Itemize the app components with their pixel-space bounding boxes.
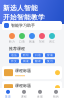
- button[interactable]: 词汇: [47, 33, 57, 43]
- button[interactable]: 听写: [21, 53, 31, 57]
- staticText: 发现: [37, 95, 43, 98]
- button[interactable]: 口语: [17, 33, 27, 43]
- button[interactable]: 口语: [33, 53, 43, 57]
- button[interactable]: 课程标题: [2, 66, 62, 79]
- button[interactable]: 课程标题: [2, 81, 62, 94]
- staticText: 翻译: [35, 60, 41, 63]
- staticText: 口语: [35, 54, 41, 57]
- staticText: 课程标题: [15, 83, 31, 88]
- staticText: 阅读: [29, 40, 35, 43]
- staticText: 复习: [47, 60, 53, 63]
- button[interactable]: 复习: [45, 59, 55, 63]
- staticText: 课程标题: [15, 68, 31, 73]
- staticText: 语法: [11, 54, 17, 57]
- button[interactable]: 课程: [16, 90, 32, 98]
- staticText: 口语: [19, 40, 25, 43]
- staticText: 我的: [53, 95, 59, 98]
- staticText: 首页: [5, 95, 11, 98]
- staticText: 听写: [23, 54, 29, 57]
- button[interactable]: 我的: [48, 90, 64, 98]
- button[interactable]: 作文: [9, 59, 19, 63]
- button[interactable]: 背诵: [45, 53, 55, 57]
- staticText: 开始智能教学: [3, 13, 45, 21]
- button[interactable]: 阅读: [27, 33, 37, 43]
- staticText: ★★★★★: [15, 74, 25, 77]
- staticText: 新选人智能: [3, 4, 38, 12]
- button[interactable]: 发现: [32, 90, 48, 98]
- staticText: 智能学习助手: [11, 23, 35, 28]
- button[interactable]: 语法: [9, 53, 19, 57]
- staticText: ★★★★★: [15, 89, 25, 92]
- staticText: 听力: [9, 40, 15, 43]
- staticText: 写作: [39, 40, 45, 43]
- button[interactable]: 听力: [7, 33, 17, 43]
- button[interactable]: 阅读: [21, 59, 31, 63]
- staticText: 作文: [11, 60, 17, 63]
- staticText: 推荐课程: [9, 46, 25, 51]
- button[interactable]: 首页: [0, 90, 16, 98]
- button[interactable]: 翻译: [33, 59, 43, 63]
- button[interactable]: 写作: [37, 33, 47, 43]
- staticText: 词汇: [49, 40, 55, 43]
- staticText: 课程: [21, 95, 27, 98]
- staticText: 背诵: [47, 54, 53, 57]
- staticText: 阅读: [23, 60, 29, 63]
